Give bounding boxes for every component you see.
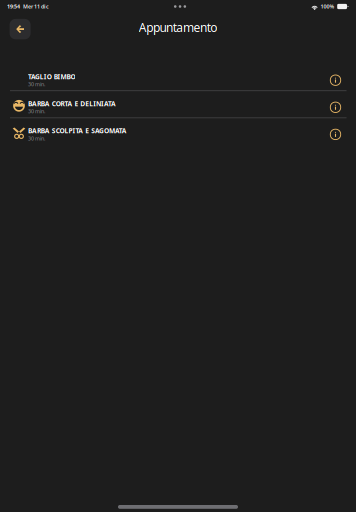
staticText: 30 min. bbox=[28, 108, 45, 115]
button[interactable]: TAGLIO BIMBO bbox=[0, 64, 356, 90]
staticText: TAGLIO BIMBO bbox=[28, 72, 75, 81]
staticText: 30 min. bbox=[28, 81, 45, 88]
button[interactable]: BARBA SCOLPITA E SAGOMATA bbox=[0, 118, 356, 145]
staticText: Appuntamento bbox=[139, 19, 217, 35]
staticText: 30 min. bbox=[28, 135, 45, 142]
staticText: 19:54 bbox=[7, 3, 20, 10]
button[interactable]: Back bbox=[10, 19, 31, 39]
button[interactable]: BARBA CORTA E DELINIATA bbox=[0, 91, 356, 117]
staticText: BARBA SCOLPITA E SAGOMATA bbox=[28, 126, 127, 135]
staticText: Mer 11 dic bbox=[23, 3, 49, 10]
staticText: 100% bbox=[321, 3, 335, 10]
staticText: BARBA CORTA E DELINIATA bbox=[28, 99, 116, 108]
